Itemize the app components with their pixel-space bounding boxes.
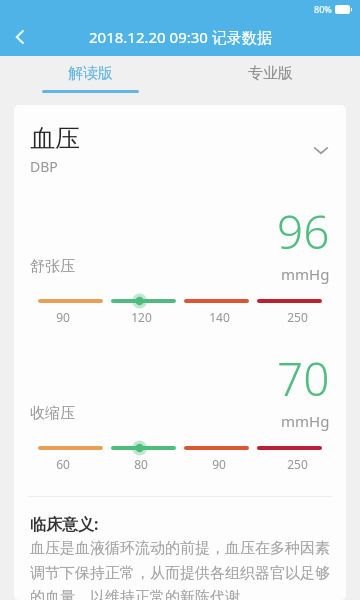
staticText: 120 [131,309,152,325]
button[interactable]: 解读版 [0,56,180,100]
staticText: 解读版 [68,64,113,83]
staticText: 250 [287,309,308,325]
staticText: 80% [314,3,332,15]
button[interactable]: Back [0,18,40,56]
staticText: 专业版 [248,64,293,83]
staticText: 血压 [30,123,80,154]
staticText: 80 [134,456,148,472]
staticText: 临床意义: [30,513,99,535]
staticText: 舒张压 [30,257,277,276]
staticText: 收缩压 [30,404,277,423]
staticText: 250 [287,456,308,472]
staticText: DBP [30,157,58,176]
staticText: 90 [212,456,226,472]
other: Expand [312,141,330,159]
staticText: 血压是血液循环流动的前提，血压在多种因素调节下保持正常，从而提供各组织器官以足够… [30,539,330,600]
staticText: 140 [209,309,230,325]
staticText: 96 [277,200,330,263]
staticText: 70 [277,347,330,410]
staticText: 90 [56,309,70,325]
button[interactable]: 专业版 [180,56,360,100]
staticText: 60 [56,456,70,472]
staticText: mmHg [281,264,330,284]
staticText: mmHg [281,411,330,431]
button[interactable]: 血压 [30,123,330,176]
staticText: 2018.12.20 09:30 记录数据 [89,27,272,47]
